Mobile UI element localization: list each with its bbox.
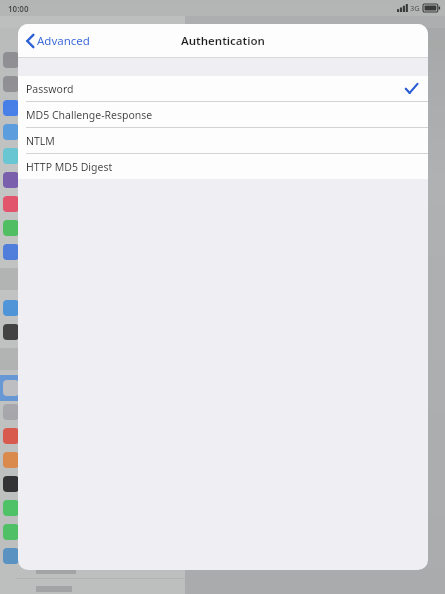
button[interactable]: Password xyxy=(18,76,428,101)
button[interactable]: HTTP MD5 Digest xyxy=(18,154,428,179)
staticText: 10:00 xyxy=(8,3,29,14)
staticText: Authentication xyxy=(181,33,265,49)
button[interactable]: MD5 Challenge-Response xyxy=(18,102,428,127)
staticText: Password xyxy=(26,82,74,96)
staticText: HTTP MD5 Digest xyxy=(26,160,113,174)
staticText: 3G xyxy=(410,3,420,13)
button[interactable]: NTLM xyxy=(18,128,428,153)
staticText: NTLM xyxy=(26,134,55,148)
other: Selected xyxy=(405,83,418,94)
button[interactable]: Advanced xyxy=(23,29,93,53)
staticText: MD5 Challenge-Response xyxy=(26,108,153,122)
staticText: Advanced xyxy=(37,33,90,49)
